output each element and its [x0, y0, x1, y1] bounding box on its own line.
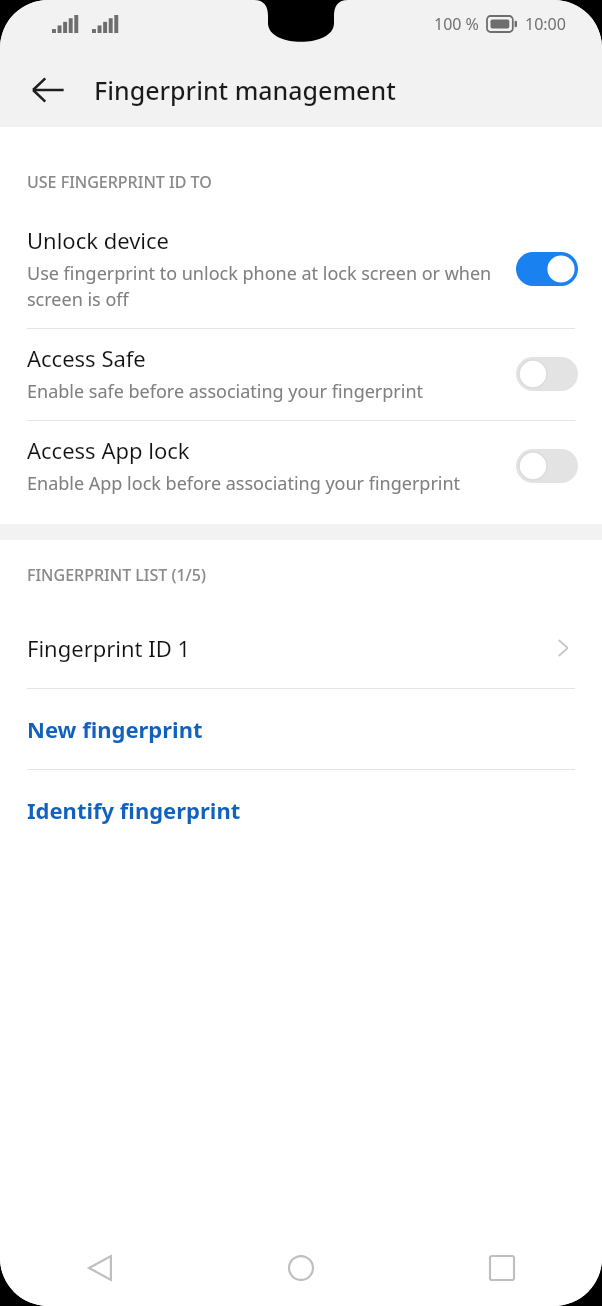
button[interactable]: Back: [0, 1230, 200, 1306]
button[interactable]: Identify fingerprint: [0, 770, 602, 850]
button[interactable]: On: [516, 252, 578, 286]
staticText: 10:00: [525, 13, 566, 35]
button[interactable]: New fingerprint: [0, 689, 602, 769]
button[interactable]: Back: [22, 64, 74, 116]
staticText: Identify fingerprint: [27, 795, 241, 825]
staticText: Unlock device: [27, 225, 170, 255]
staticText: Enable safe before associating your fing…: [27, 379, 424, 404]
button[interactable]: Recent apps: [401, 1230, 602, 1306]
staticText: Use fingerprint to unlock phone at lock …: [27, 261, 502, 312]
staticText: New fingerprint: [27, 714, 203, 744]
staticText: USE FINGERPRINT ID TO: [27, 171, 212, 193]
button[interactable]: Off: [516, 449, 578, 483]
staticText: Access App lock: [27, 435, 190, 465]
staticText: Fingerprint management: [94, 73, 396, 107]
button[interactable]: Off: [516, 357, 578, 391]
button[interactable]: Access App lock: [0, 421, 602, 512]
staticText: Fingerprint ID 1: [27, 633, 552, 663]
staticText: 100 %: [434, 13, 479, 35]
button[interactable]: Access Safe: [0, 329, 602, 420]
button[interactable]: Fingerprint ID 1: [0, 608, 602, 688]
button[interactable]: Home: [200, 1230, 401, 1306]
staticText: Access Safe: [27, 343, 146, 373]
button[interactable]: Unlock device: [0, 211, 602, 328]
staticText: Enable App lock before associating your …: [27, 471, 461, 496]
staticText: FINGERPRINT LIST (1/5): [27, 564, 206, 586]
